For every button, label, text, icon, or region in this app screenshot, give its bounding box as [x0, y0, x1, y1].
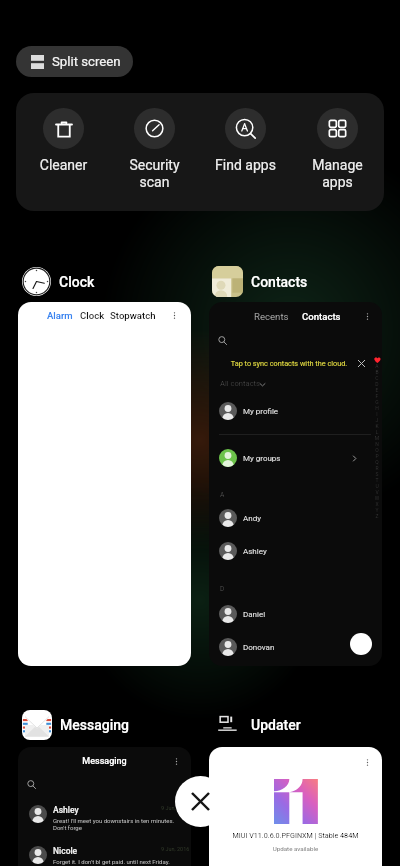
button[interactable]: Andy [219, 509, 358, 527]
staticText: Alarm [47, 310, 73, 321]
staticText: J [373, 417, 381, 423]
button[interactable]: Alarm [18, 302, 191, 666]
staticText: All contacts [220, 379, 261, 388]
button[interactable]: Updater [214, 709, 301, 740]
staticText: Ashley [243, 547, 267, 556]
button[interactable]: Ashley [29, 805, 190, 832]
button[interactable]: Nicole [29, 846, 190, 865]
staticText: Stopwatch [110, 310, 156, 321]
staticText: E [373, 387, 381, 393]
button[interactable]: Split screen [16, 46, 133, 77]
staticText: C [373, 375, 381, 381]
staticText: Find apps [200, 157, 291, 173]
button[interactable]: Clock [22, 266, 95, 297]
staticText: Cleaner [18, 157, 109, 173]
staticText: D [220, 585, 225, 593]
staticText: ♥ [374, 357, 381, 363]
staticText: S [373, 471, 381, 477]
staticText: U [373, 483, 381, 489]
staticText: Recents [254, 311, 289, 322]
button[interactable]: Find apps [200, 93, 291, 211]
button[interactable]: Ashley [219, 542, 358, 560]
staticText: Update available [209, 845, 382, 852]
staticText: H [373, 405, 381, 411]
staticText: O [373, 447, 381, 453]
button[interactable]: Donovan [219, 638, 358, 656]
staticText: Clock [59, 274, 95, 290]
staticText: A [220, 491, 225, 499]
button[interactable]: Messaging [18, 747, 191, 866]
staticText: X [373, 501, 381, 507]
staticText: Q [373, 459, 381, 465]
staticText: Messaging [60, 717, 129, 733]
staticText: Split screen [52, 54, 121, 69]
staticText: R [373, 465, 381, 471]
staticText: My groups [243, 454, 281, 463]
button[interactable]: Recents [209, 302, 382, 666]
staticText: Contacts [251, 274, 308, 290]
button[interactable]: My groups [219, 449, 358, 467]
button[interactable]: Messaging [22, 709, 129, 740]
staticText: Updater [251, 717, 301, 733]
button[interactable]: MIUI V11.0.6.0.PFGINXM | Stable 484M [209, 747, 382, 866]
staticText: Manage apps [292, 157, 383, 191]
staticText: Nicole [53, 846, 161, 856]
staticText: Security scan [109, 157, 200, 191]
button[interactable]: My profile [219, 402, 358, 420]
staticText: Y [373, 507, 381, 513]
staticText: W [373, 495, 381, 501]
button[interactable]: Contacts [212, 266, 308, 297]
staticText: Andy [243, 514, 261, 523]
staticText: Forget it. I don't bl get paid. until ne… [53, 858, 170, 865]
button[interactable]: Manage apps [292, 93, 383, 211]
button[interactable]: Close all [175, 776, 226, 827]
button[interactable]: Add contact [350, 633, 372, 655]
staticText: Messaging [18, 756, 191, 767]
staticText: Contacts [302, 311, 341, 322]
staticText: D [373, 381, 381, 387]
button[interactable]: Cleaner [18, 93, 109, 211]
staticText: T [373, 477, 381, 483]
staticText: 9 Jun, 2016 [161, 846, 190, 852]
staticText: L [373, 429, 381, 435]
staticText: Great! I'll meet you downstairs in ten m… [53, 817, 175, 832]
button[interactable]: Security scan [109, 93, 200, 211]
staticText: 9 Jun, 2016 [161, 805, 190, 811]
staticText: K [373, 423, 381, 429]
staticText: Ashley [53, 805, 161, 815]
button[interactable]: Daniel [219, 605, 358, 623]
staticText: MIUI V11.0.6.0.PFGINXM | Stable 484M [209, 831, 382, 839]
staticText: N [373, 441, 381, 447]
staticText: B [373, 369, 381, 375]
staticText: M [373, 435, 381, 441]
staticText: My profile [243, 407, 279, 416]
staticText: G [373, 399, 381, 405]
staticText: V [373, 489, 381, 495]
staticText: Donovan [243, 643, 275, 652]
staticText: P [373, 453, 381, 459]
staticText: Tap to sync contacts with the cloud. [213, 359, 365, 368]
staticText: Clock [80, 310, 105, 321]
staticText: Daniel [243, 610, 266, 619]
staticText: F [373, 393, 381, 399]
staticText: Z [373, 513, 381, 519]
staticText: A [373, 363, 381, 369]
